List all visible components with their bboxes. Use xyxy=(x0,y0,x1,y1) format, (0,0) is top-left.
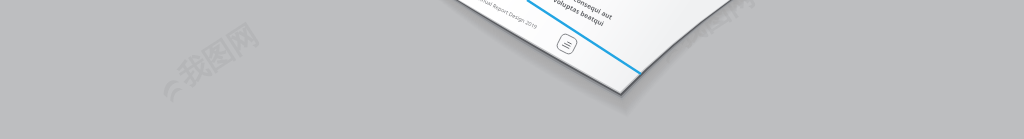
button[interactable]: Annual Report Design 2019 brochure mocku… xyxy=(0,0,1024,139)
